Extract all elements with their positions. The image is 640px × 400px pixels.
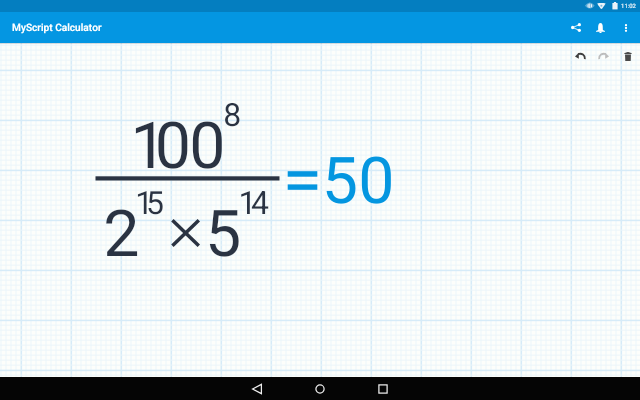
button[interactable]: Recent apps <box>372 378 394 400</box>
button[interactable]: Delete <box>614 42 640 70</box>
button[interactable]: More options <box>612 14 640 42</box>
button[interactable]: Back <box>246 378 268 400</box>
button[interactable]: Undo <box>566 42 594 70</box>
button[interactable]: Redo <box>590 42 618 70</box>
button[interactable]: Notifications <box>586 14 614 42</box>
button[interactable]: Home <box>309 378 331 400</box>
button[interactable]: Share <box>560 12 592 43</box>
